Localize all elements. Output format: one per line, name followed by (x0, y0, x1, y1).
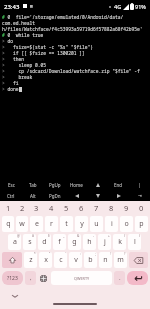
staticText: . (119, 274, 121, 282)
button[interactable]: 5 (59, 201, 74, 215)
button[interactable]: p (135, 216, 148, 232)
button[interactable]: 4 (44, 201, 59, 215)
staticText: > done (2, 86, 19, 92)
button[interactable]: m (114, 252, 127, 268)
button[interactable]: Shift (2, 252, 22, 268)
button[interactable]: s (23, 234, 36, 250)
button[interactable]: b (84, 252, 97, 268)
button[interactable]: h (83, 234, 96, 250)
button[interactable]: Alt (22, 190, 44, 201)
staticText: ?123 (7, 275, 18, 282)
staticText: _ (63, 234, 65, 238)
button[interactable]: g (68, 234, 81, 250)
button[interactable]: Esc (0, 179, 22, 190)
button[interactable]: u (90, 216, 103, 232)
staticText: , (30, 274, 32, 282)
button[interactable]: 9 (119, 201, 134, 215)
button[interactable]: ⇥ (129, 190, 150, 201)
staticText: Esc (8, 182, 15, 188)
button[interactable]: 3 (29, 201, 44, 215)
staticText: v (74, 255, 78, 265)
staticText: g (72, 237, 77, 247)
button[interactable]: 1 (1, 201, 15, 215)
button[interactable]: ?123 (2, 271, 23, 285)
staticText: x (44, 255, 48, 265)
staticText: u (94, 219, 99, 229)
button[interactable]: Backspace (129, 252, 148, 268)
staticText: 9 (124, 203, 129, 213)
button[interactable]: l (128, 234, 141, 250)
staticText: : (80, 252, 81, 256)
button[interactable]: | (129, 179, 150, 190)
button[interactable]: n (99, 252, 112, 268)
button[interactable]: Left (66, 190, 87, 201)
staticText: 91% (135, 3, 146, 10)
button[interactable]: Tab (22, 179, 44, 190)
button[interactable]: PgDn (44, 190, 66, 201)
staticText: l (134, 237, 136, 247)
button[interactable]: z (24, 252, 37, 268)
button[interactable]: x (39, 252, 52, 268)
staticText: " (49, 252, 51, 256)
button[interactable]: e (30, 216, 43, 232)
button[interactable]: 8 (104, 201, 119, 215)
button[interactable]: a (8, 234, 21, 250)
staticText: # 0 while true (2, 32, 44, 38)
button[interactable]: Right (108, 190, 129, 201)
staticText: h (87, 237, 92, 247)
staticText: ! (110, 252, 111, 256)
staticText: * (34, 252, 36, 256)
staticText: & (77, 234, 80, 238)
button[interactable]: Ctrl (0, 190, 22, 201)
button[interactable]: , (25, 271, 36, 285)
staticText: > then (2, 56, 25, 62)
staticText: > cp /sdcard/Download/watchface.zip "$fi… (2, 68, 140, 74)
button[interactable]: i (105, 216, 118, 232)
staticText: 4G (114, 3, 122, 10)
button[interactable]: 7 (89, 201, 104, 215)
staticText: ⇥ (138, 193, 142, 198)
button[interactable]: Home (66, 179, 87, 190)
button[interactable]: d (38, 234, 51, 250)
staticText: Alt (30, 193, 36, 199)
button[interactable]: QWERTY (51, 271, 112, 285)
staticText: 7 (94, 203, 99, 213)
button[interactable]: o (120, 216, 133, 232)
staticText: k (118, 237, 122, 247)
staticText: 2 (20, 203, 25, 213)
staticText: > break (2, 74, 33, 80)
button[interactable]: v (69, 252, 82, 268)
button[interactable]: End (108, 179, 129, 190)
staticText: h/files/Watchface/f4c53993a59719d6f57882… (2, 26, 143, 32)
button[interactable]: 6 (74, 201, 89, 215)
staticText: a (13, 237, 17, 247)
button[interactable]: y (75, 216, 88, 232)
staticText: 0 (139, 203, 144, 213)
button[interactable]: Up (87, 179, 108, 190)
button[interactable]: Hide keyboard (10, 291, 20, 301)
button[interactable]: 0 (134, 201, 149, 215)
staticText: w (19, 219, 25, 229)
button[interactable]: PgUp (44, 179, 66, 190)
button[interactable]: 2 (15, 201, 29, 215)
staticText: > do (2, 38, 14, 44)
staticText: End (114, 182, 123, 188)
button[interactable]: r (45, 216, 58, 232)
staticText: ' (65, 252, 66, 256)
button[interactable]: . (114, 271, 125, 285)
button[interactable]: Enter (127, 271, 148, 285)
button[interactable]: Down (87, 190, 108, 201)
button[interactable]: Change language (38, 271, 49, 285)
staticText: n (103, 255, 108, 265)
button[interactable]: w (16, 216, 28, 232)
staticText: y (80, 219, 84, 229)
staticText: p (139, 219, 144, 229)
button[interactable]: t (60, 216, 73, 232)
staticText: 23:43 (4, 3, 20, 11)
button[interactable]: j (98, 234, 111, 250)
button[interactable]: c (54, 252, 67, 268)
staticText: # (32, 234, 35, 238)
button[interactable]: f (53, 234, 66, 250)
button[interactable]: k (113, 234, 126, 250)
button[interactable]: q (2, 216, 14, 232)
